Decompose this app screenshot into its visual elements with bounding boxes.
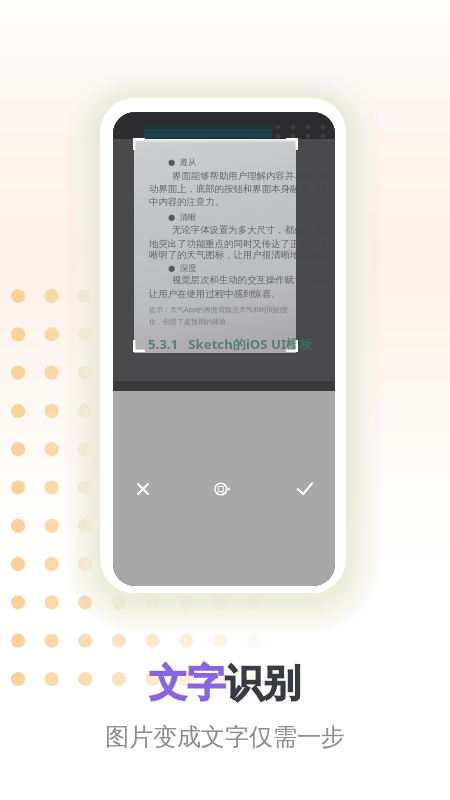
staticText: 地突出了功能重点的同时又传达了正确的设 <box>149 238 328 250</box>
staticText: 图片变成文字仅需一步 <box>105 722 345 752</box>
staticText: 晰明了的天气图标，让用户很清晰地看到各 <box>149 249 328 261</box>
staticText: 中内容的注意力。 <box>149 196 225 208</box>
staticText: ● 清晰 <box>168 211 197 222</box>
staticText: ● 遵从 <box>168 156 197 167</box>
staticText: 界面能够帮助用户理解内容并与用户进行互 <box>172 170 335 182</box>
staticText: 提示：天气App的界面背隐去天气和时间的变 <box>149 305 289 315</box>
staticText: 视觉层次和生动的交互操作赋予了用户生 <box>172 274 335 286</box>
staticText: 让用户在使用过程中感到惊喜。 <box>149 288 281 300</box>
staticText: 化，创造了超预期的体验。 <box>149 317 233 326</box>
button[interactable]: Cancel <box>125 471 161 507</box>
staticText: 文字识别 <box>149 659 301 707</box>
staticText: 动界面上，底部的按钮和界面本身融为一体，更 <box>149 183 335 195</box>
button[interactable]: Rotate <box>205 471 241 507</box>
staticText: 无论字体设置为多大尺寸，都必须清晰易读 <box>172 224 335 236</box>
staticText: 5.3.1 Sketch的iOS UI模板 <box>148 335 313 353</box>
staticText: ● 深度 <box>168 262 197 273</box>
button[interactable]: Confirm <box>287 471 323 507</box>
